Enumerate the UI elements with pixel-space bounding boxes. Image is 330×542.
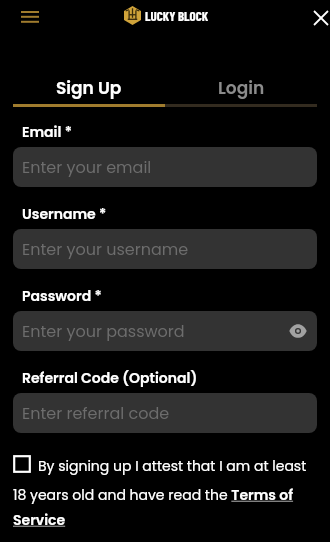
- button[interactable]: Menu: [9, 2, 51, 34]
- staticText: Enter your username: [22, 238, 189, 260]
- button[interactable]: Enter your email: [13, 147, 317, 187]
- staticText: By signing up I attest that I am at leas…: [38, 456, 307, 476]
- button[interactable]: I attest that I am at least 18 years old: [13, 455, 31, 473]
- button[interactable]: Enter your username: [13, 229, 317, 269]
- staticText: Email *: [22, 122, 72, 142]
- staticText: Enter your email: [22, 156, 152, 178]
- button[interactable]: Sign Up: [13, 76, 165, 107]
- staticText: Enter referral code: [22, 402, 170, 424]
- staticText: LUCKY BLOCK: [145, 8, 209, 24]
- staticText: Login: [218, 76, 265, 100]
- button[interactable]: Enter referral code: [13, 393, 317, 433]
- button[interactable]: Enter your password: [13, 311, 317, 351]
- staticText: Sign Up: [56, 76, 122, 100]
- staticText: 18 years old and have read the Terms of: [13, 485, 294, 505]
- staticText: Referral Code (Optional): [22, 368, 198, 388]
- button[interactable]: Show password: [288, 321, 308, 341]
- staticText: Username *: [22, 204, 107, 224]
- staticText: Service: [13, 510, 66, 530]
- staticText: Enter your password: [22, 320, 185, 342]
- button[interactable]: Close: [307, 4, 330, 32]
- button[interactable]: Login: [165, 76, 317, 107]
- staticText: Password *: [22, 286, 102, 306]
